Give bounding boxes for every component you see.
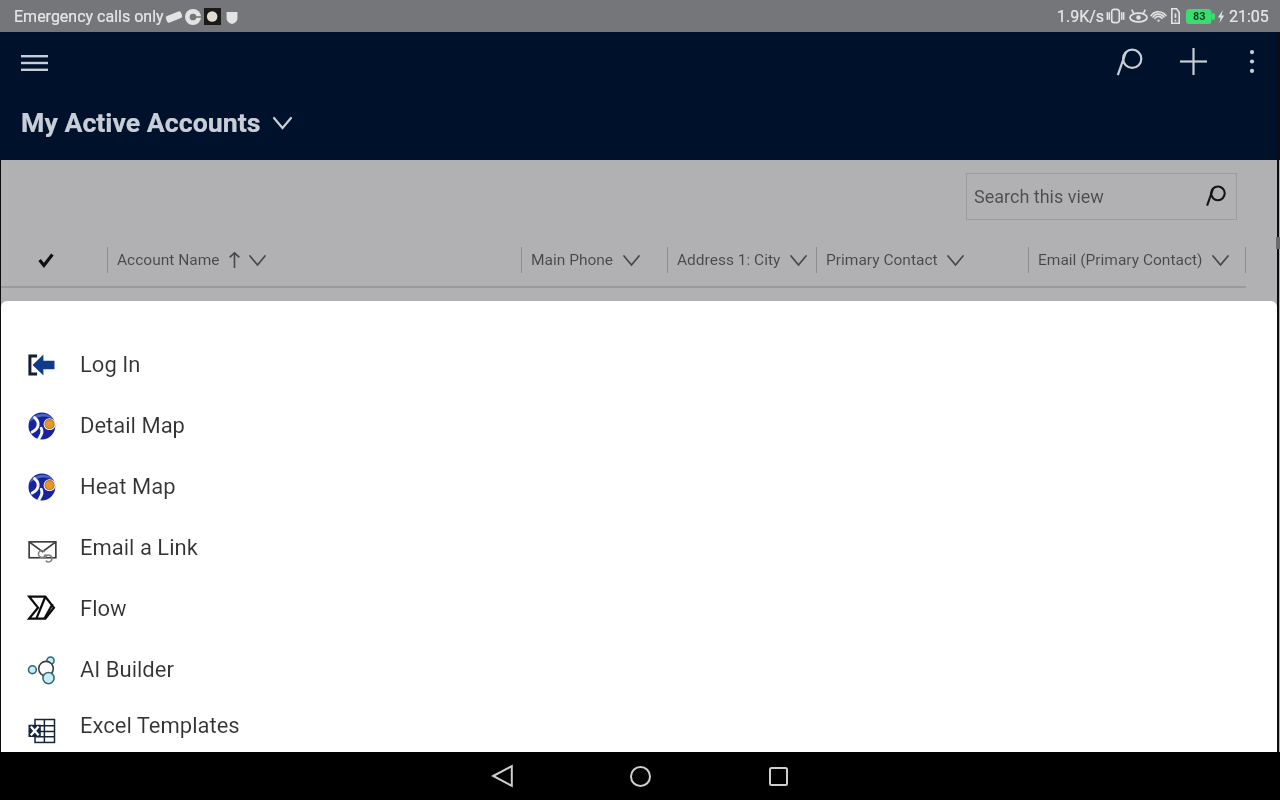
staticText: Main Phone xyxy=(531,251,614,269)
button[interactable]: My Active Accounts xyxy=(12,101,300,144)
button[interactable]: Home xyxy=(616,752,664,800)
staticText: Account Name xyxy=(117,251,220,269)
staticText: Detail Map xyxy=(80,413,185,439)
button[interactable]: Address 1: City xyxy=(667,240,816,280)
button[interactable]: Excel Templates xyxy=(1,700,1277,752)
button[interactable]: More options xyxy=(1228,37,1276,85)
staticText: Flow xyxy=(80,596,127,622)
staticText: Emergency calls only xyxy=(14,7,164,26)
staticText: AI Builder xyxy=(80,657,174,683)
button[interactable]: Email (Primary Contact) xyxy=(1028,240,1238,280)
button[interactable]: Recent apps xyxy=(754,752,802,800)
button[interactable]: Email a Link xyxy=(1,517,1277,578)
staticText: My Active Accounts xyxy=(21,107,261,138)
staticText: Excel Templates xyxy=(80,713,240,739)
button[interactable]: Primary Contact xyxy=(816,240,973,280)
button[interactable]: Select all xyxy=(26,240,66,280)
button[interactable]: Back xyxy=(478,752,526,800)
staticText: Address 1: City xyxy=(677,251,781,269)
button[interactable]: Detail Map xyxy=(1,395,1277,456)
button[interactable]: Heat Map xyxy=(1,456,1277,517)
button[interactable]: AI Builder xyxy=(1,639,1277,700)
button[interactable]: Flow xyxy=(1,578,1277,639)
button[interactable]: Main Phone xyxy=(521,240,649,280)
button[interactable]: New record xyxy=(1169,37,1217,85)
button[interactable]: Account Name xyxy=(107,240,275,280)
staticText: Email a Link xyxy=(80,535,198,561)
staticText: 21:05 xyxy=(1229,7,1269,26)
button[interactable]: Search this view xyxy=(966,173,1237,220)
staticText: 83 xyxy=(1193,10,1206,23)
staticText: Log In xyxy=(80,352,141,378)
staticText: Heat Map xyxy=(80,474,176,500)
button[interactable]: Navigation menu xyxy=(10,39,58,87)
staticText: Email (Primary Contact) xyxy=(1038,251,1203,269)
staticText: 1.9K/s xyxy=(1057,7,1105,26)
button[interactable]: Log In xyxy=(1,334,1277,395)
staticText: Primary Contact xyxy=(826,251,938,269)
button[interactable]: Search xyxy=(1105,39,1153,87)
staticText: Search this view xyxy=(974,186,1104,207)
